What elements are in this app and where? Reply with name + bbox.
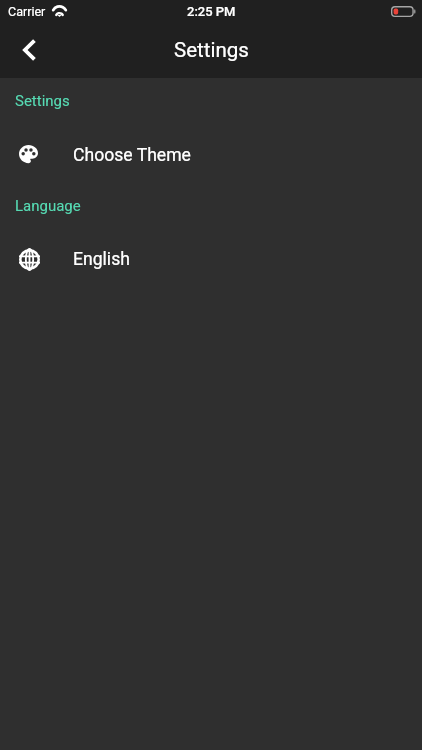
staticText: 2:25 PM <box>187 4 236 19</box>
staticText: English <box>73 249 130 270</box>
staticText: Settings <box>15 92 70 110</box>
button[interactable]: Choose Theme <box>0 133 422 177</box>
button[interactable]: English <box>0 237 422 281</box>
staticText: Carrier <box>8 4 46 19</box>
button[interactable]: Back <box>7 28 50 71</box>
staticText: Settings <box>174 38 249 62</box>
staticText: Choose Theme <box>73 145 191 166</box>
staticText: Language <box>15 197 81 215</box>
